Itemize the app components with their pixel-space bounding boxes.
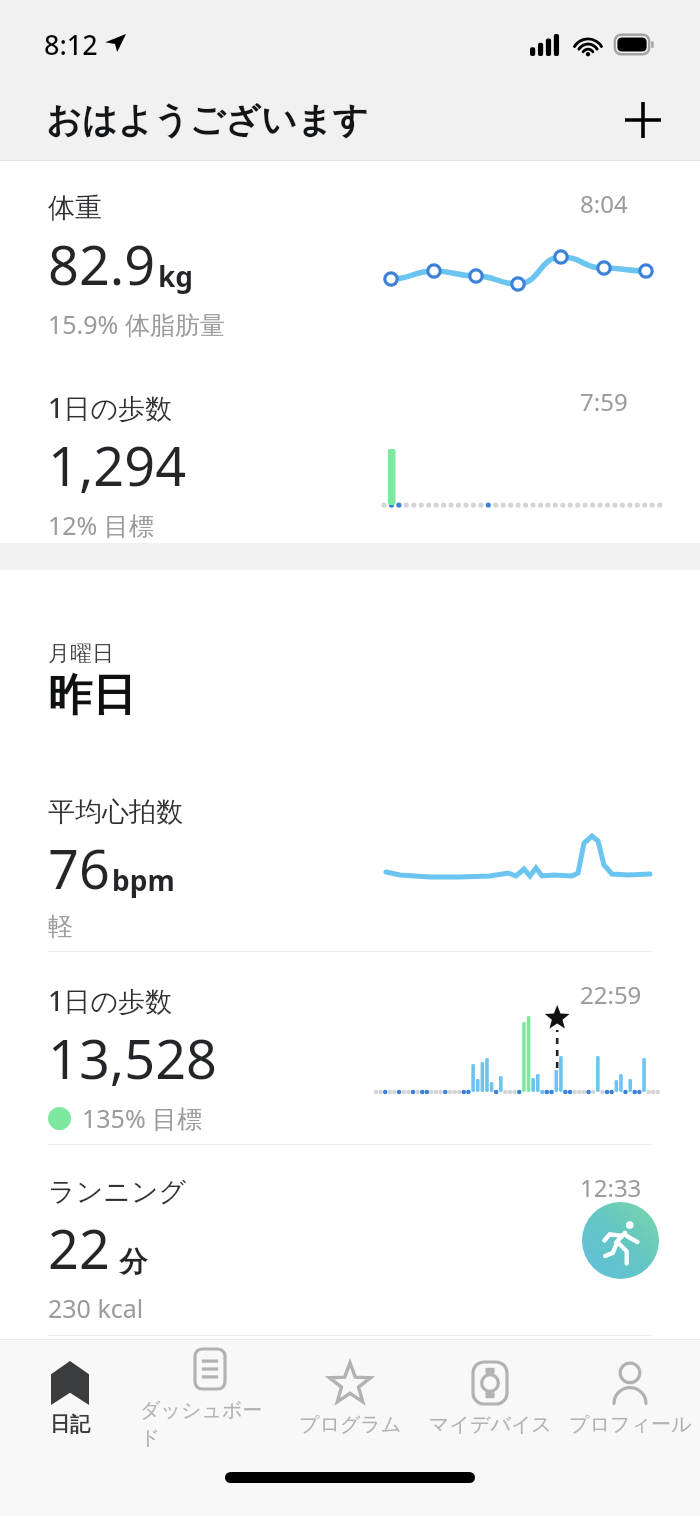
staticText: マイデバイス [429,1412,552,1437]
staticText: 22 [48,1211,110,1285]
staticText: 12:33 [580,1171,642,1204]
staticText: 体重 [48,191,102,225]
staticText: プログラム [299,1412,402,1437]
staticText: ランニング [48,1175,187,1209]
staticText: 1日の歩数 [48,982,173,1019]
staticText: プロフィール [569,1412,692,1437]
staticText: 1日の歩数 [48,389,173,426]
staticText: 月曜日 [48,640,114,668]
staticText: bpm [112,861,175,899]
button[interactable]: 1日の歩数 [0,359,700,543]
button[interactable]: 平均心拍数 [0,765,700,952]
button[interactable]: プログラム [280,1340,420,1456]
staticText: 1,294 [48,428,187,502]
staticText: 22:59 [580,978,642,1011]
button[interactable]: 日記 [0,1340,140,1456]
staticText: 13,528 [48,1021,217,1095]
button[interactable]: ランニング [0,1145,700,1336]
staticText: 230 kcal [48,1291,144,1325]
staticText: kg [158,257,194,295]
button[interactable]: 体重 [0,161,700,359]
button[interactable]: 1日の歩数 [0,952,700,1145]
staticText: 12% 目標 [48,508,154,542]
staticText: 76 [48,831,110,905]
button[interactable]: マイデバイス [420,1340,560,1456]
staticText: おはようございます [46,98,369,142]
staticText: 135% 目標 [82,1101,203,1135]
staticText: 昨日 [48,668,136,723]
button[interactable]: 月曜日 [48,640,136,723]
staticText: 82.9 [48,227,156,301]
staticText: ダッシュボード [140,1398,280,1450]
staticText: 15.9% 体脂肪量 [48,307,225,341]
staticText: 8:12 [44,26,98,63]
staticText: 7:59 [580,385,628,418]
button[interactable]: プロフィール [560,1340,700,1456]
button[interactable]: ダッシュボード [140,1340,280,1456]
staticText: 8:04 [580,187,628,220]
button[interactable]: 追加 [618,95,668,145]
staticText: 日記 [50,1412,90,1437]
staticText: 軽 [48,911,73,942]
staticText: 分 [112,1241,148,1279]
staticText: 平均心拍数 [48,795,183,829]
